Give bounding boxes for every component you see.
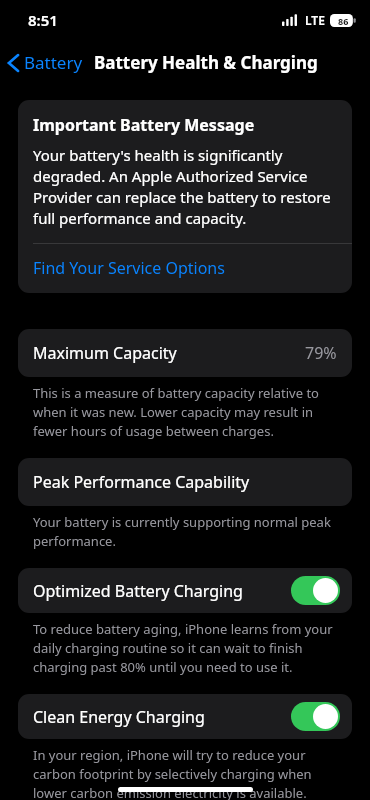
staticText: Battery [24,51,83,74]
staticText: Peak Performance Capability [33,471,337,493]
staticText: Important Battery Message [33,114,255,136]
staticText: Optimized Battery Charging [33,580,291,602]
button[interactable]: Find Your Service Options [18,244,352,293]
button[interactable]: Clean Energy Charging [18,694,352,739]
staticText: 8:51 [28,10,58,30]
staticText: To reduce battery aging, iPhone learns f… [33,620,342,676]
button[interactable]: Peak Performance Capability [18,458,352,506]
staticText: LTE [305,12,325,28]
staticText: Your battery's health is significantly d… [33,145,337,229]
button[interactable]: Battery [0,47,89,78]
staticText: Find Your Service Options [33,257,225,279]
button[interactable]: Toggle on [291,576,340,605]
staticText: In your region, iPhone will try to reduc… [33,746,342,800]
button[interactable]: Toggle on [291,702,340,731]
staticText: Maximum Capacity [33,342,305,364]
button[interactable]: Optimized Battery Charging [18,568,352,613]
staticText: Clean Energy Charging [33,706,291,728]
staticText: Your battery is currently supporting nor… [33,513,342,550]
staticText: Battery Health & Charging [94,51,318,74]
staticText: 79% [305,342,337,364]
button[interactable]: Maximum Capacity [18,329,352,377]
staticText: This is a measure of battery capacity re… [33,384,342,440]
staticText: 86 [338,15,349,27]
